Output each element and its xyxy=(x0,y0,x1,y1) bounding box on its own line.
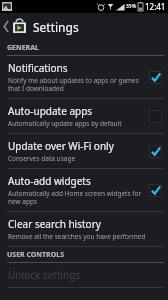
button[interactable]: Unchecked xyxy=(149,110,162,123)
staticText: Automatically add Home screen widgets fo… xyxy=(8,189,145,206)
button[interactable]: Auto-update apps xyxy=(0,99,168,133)
staticText: Unlock settings xyxy=(8,268,81,282)
button[interactable]: Checked xyxy=(149,71,162,84)
staticText: 35% xyxy=(126,3,137,10)
staticText: 12:41 xyxy=(145,1,166,12)
staticText: GENERAL xyxy=(7,43,39,53)
staticText: Notify me about updates to apps or games… xyxy=(8,76,145,93)
button[interactable]: Checked xyxy=(149,145,162,158)
button[interactable]: Checked xyxy=(149,184,162,197)
button[interactable]: Notifications xyxy=(0,56,168,98)
staticText: Automatically update apps by default xyxy=(8,119,122,128)
staticText: Conserves data usage xyxy=(8,154,76,163)
other: Back xyxy=(3,21,9,32)
staticText: Auto-update apps xyxy=(8,104,93,118)
button[interactable]: Auto-add widgets xyxy=(0,169,168,211)
button[interactable]: Back xyxy=(0,13,168,40)
staticText: Settings xyxy=(33,19,79,35)
staticText: Auto-add widgets xyxy=(8,174,91,188)
staticText: Notifications xyxy=(8,61,68,75)
staticText: Update over Wi-Fi only xyxy=(8,139,114,153)
button[interactable]: Update over Wi-Fi only xyxy=(0,134,168,168)
button[interactable]: Clear search history xyxy=(0,212,168,246)
staticText: USER CONTROLS xyxy=(7,250,65,260)
staticText: Clear search history xyxy=(8,217,101,231)
staticText: Remove all the searches you have perform… xyxy=(8,232,146,241)
